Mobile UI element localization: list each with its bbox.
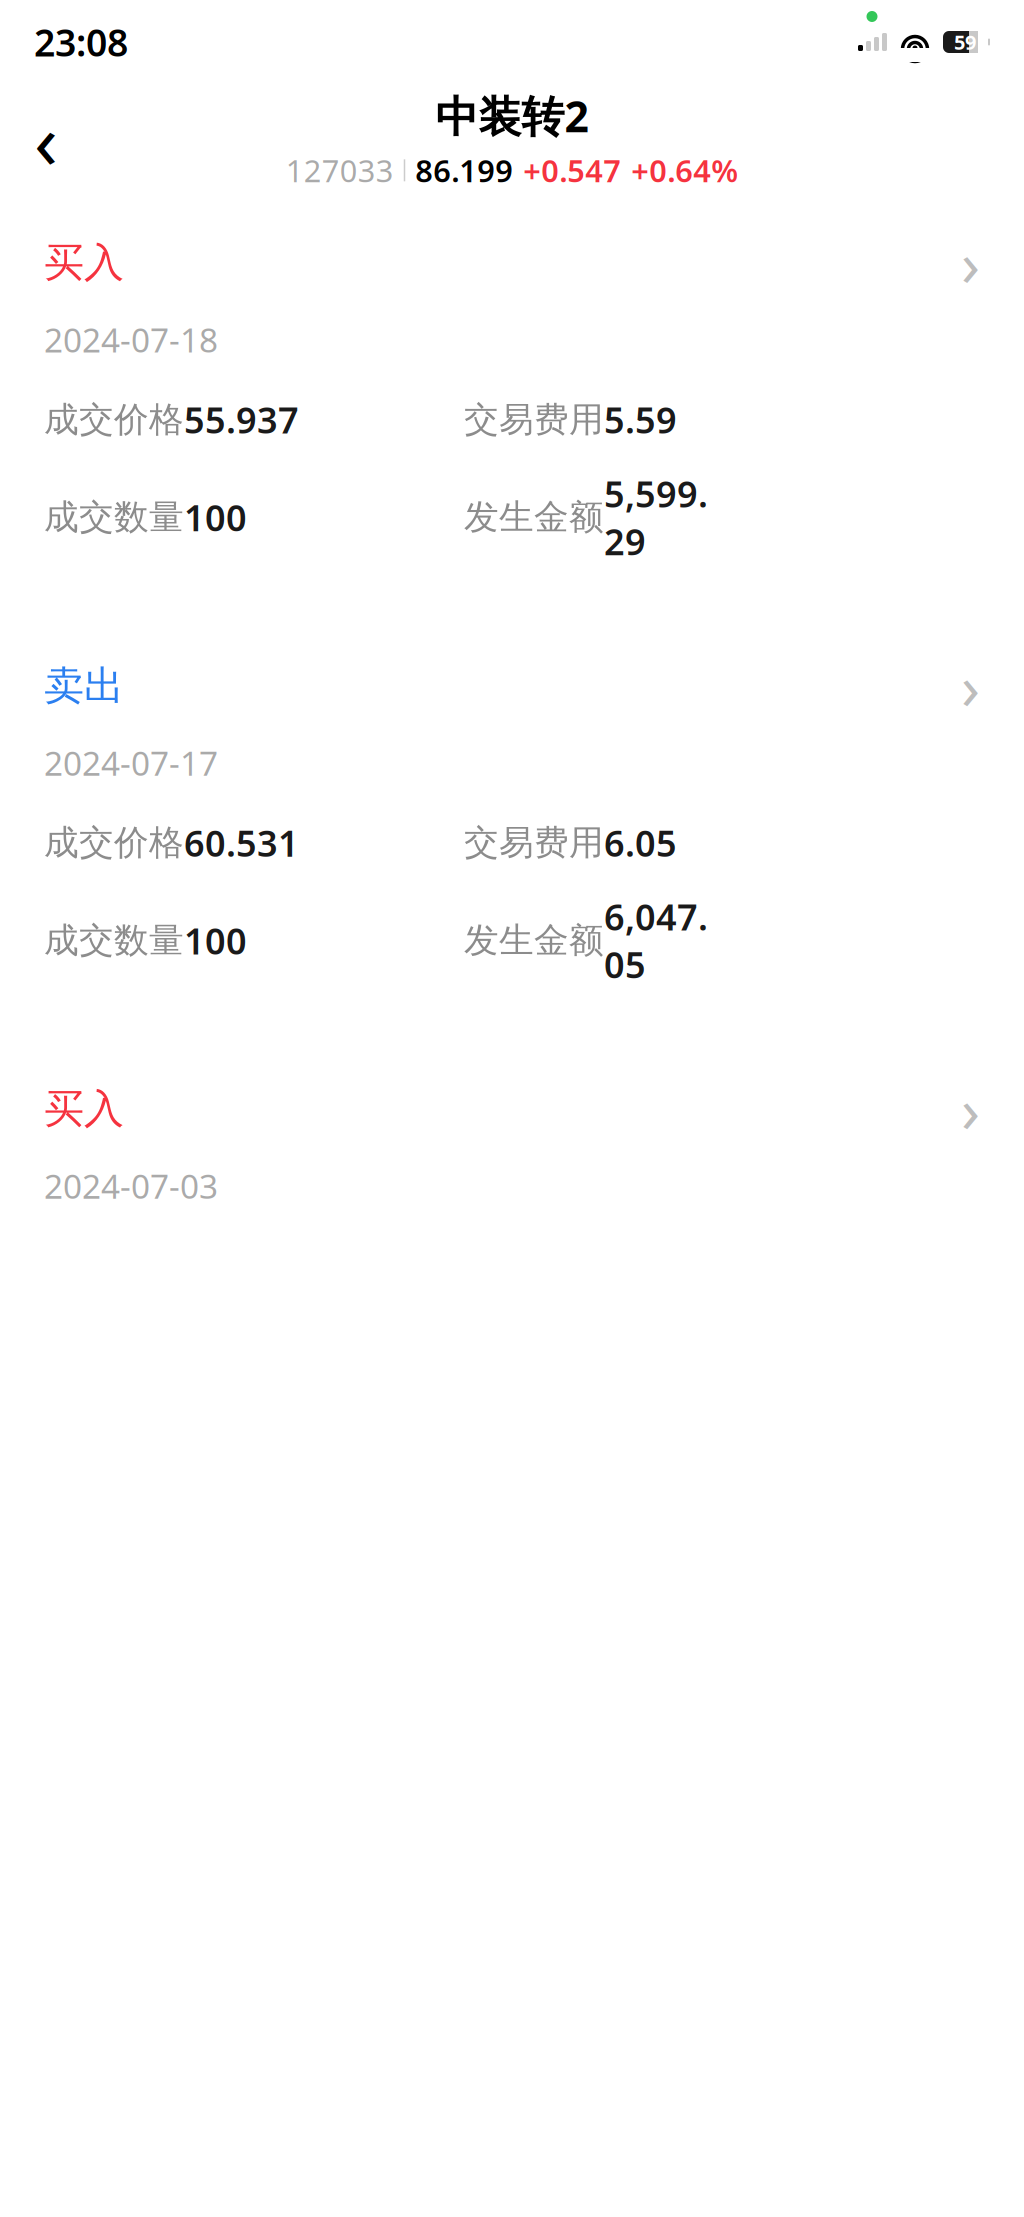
staticText: 100	[184, 917, 247, 964]
staticText: 6.05	[604, 819, 677, 867]
staticText: 2024-07-18	[44, 317, 218, 362]
staticText: 交易费用	[464, 821, 604, 864]
staticText: +0.64%	[631, 150, 738, 191]
staticText: 5.59	[604, 396, 677, 443]
staticText: 6,047.05	[604, 893, 708, 988]
staticText: 成交价格	[44, 398, 184, 441]
staticText: 5,599.29	[604, 469, 708, 565]
staticText: 买入	[44, 1084, 124, 1133]
button[interactable]: 卖出	[0, 617, 1024, 1040]
button[interactable]: 返回	[0, 93, 92, 185]
staticText: 59	[954, 29, 976, 55]
staticText: 55.937	[184, 396, 299, 443]
staticText: 127033	[286, 150, 394, 191]
staticText: 60.531	[184, 819, 299, 867]
staticText: 卖出	[44, 661, 124, 710]
staticText: ›	[961, 222, 980, 303]
staticText: 成交数量	[44, 919, 184, 962]
staticText: 100	[184, 493, 247, 541]
staticText: 86.199	[415, 150, 513, 191]
button[interactable]: 买入	[0, 1040, 1024, 1463]
staticText: 2024-07-03	[44, 1164, 218, 1208]
staticText: 成交数量	[44, 496, 184, 539]
staticText: 交易费用	[464, 398, 604, 441]
staticText: ›	[961, 645, 980, 726]
staticText: 中装转2	[435, 87, 588, 144]
staticText: 2024-07-17	[44, 741, 218, 785]
staticText: 买入	[44, 238, 124, 287]
button[interactable]: 买入	[0, 194, 1024, 617]
staticText: ›	[961, 1068, 980, 1150]
staticText: +0.547	[523, 150, 621, 191]
staticText: ‹	[34, 88, 58, 190]
staticText: 发生金额	[464, 496, 604, 539]
staticText: 成交价格	[44, 821, 184, 864]
staticText: 发生金额	[464, 919, 604, 962]
staticText: 23:08	[34, 17, 128, 67]
